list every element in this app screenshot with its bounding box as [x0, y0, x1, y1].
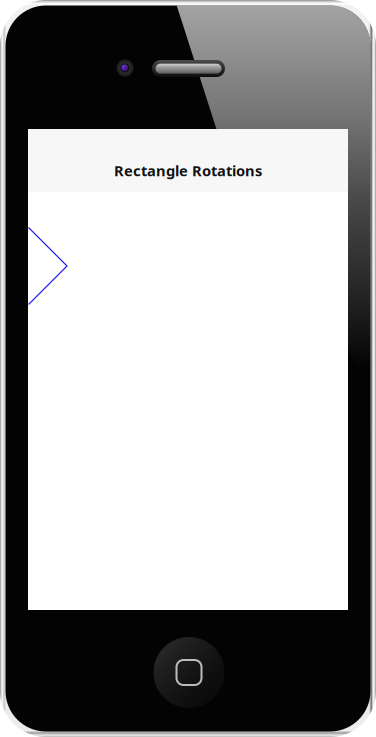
staticText: Rectangle Rotations [114, 161, 262, 180]
button[interactable]: Home [153, 637, 224, 708]
